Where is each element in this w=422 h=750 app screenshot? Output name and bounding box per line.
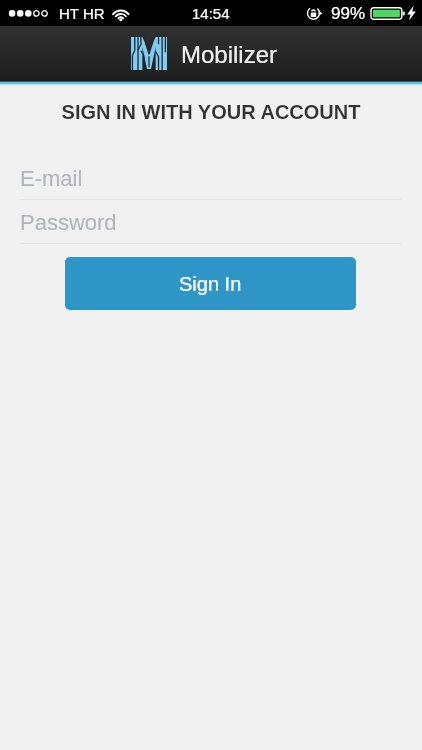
other: Mobilizer logo [131, 37, 167, 70]
staticText: Sign In [179, 273, 242, 295]
button[interactable]: Password [0, 202, 422, 242]
button[interactable]: E-mail [0, 158, 422, 198]
staticText: 14:54 [192, 5, 230, 22]
staticText: E-mail [20, 166, 83, 191]
staticText: Password [20, 210, 117, 235]
staticText: 99% [331, 4, 366, 23]
staticText: Mobilizer [181, 41, 278, 68]
button[interactable]: Sign In [65, 257, 356, 310]
staticText: SIGN IN WITH YOUR ACCOUNT [0, 101, 422, 123]
staticText: HT HR [59, 5, 105, 22]
